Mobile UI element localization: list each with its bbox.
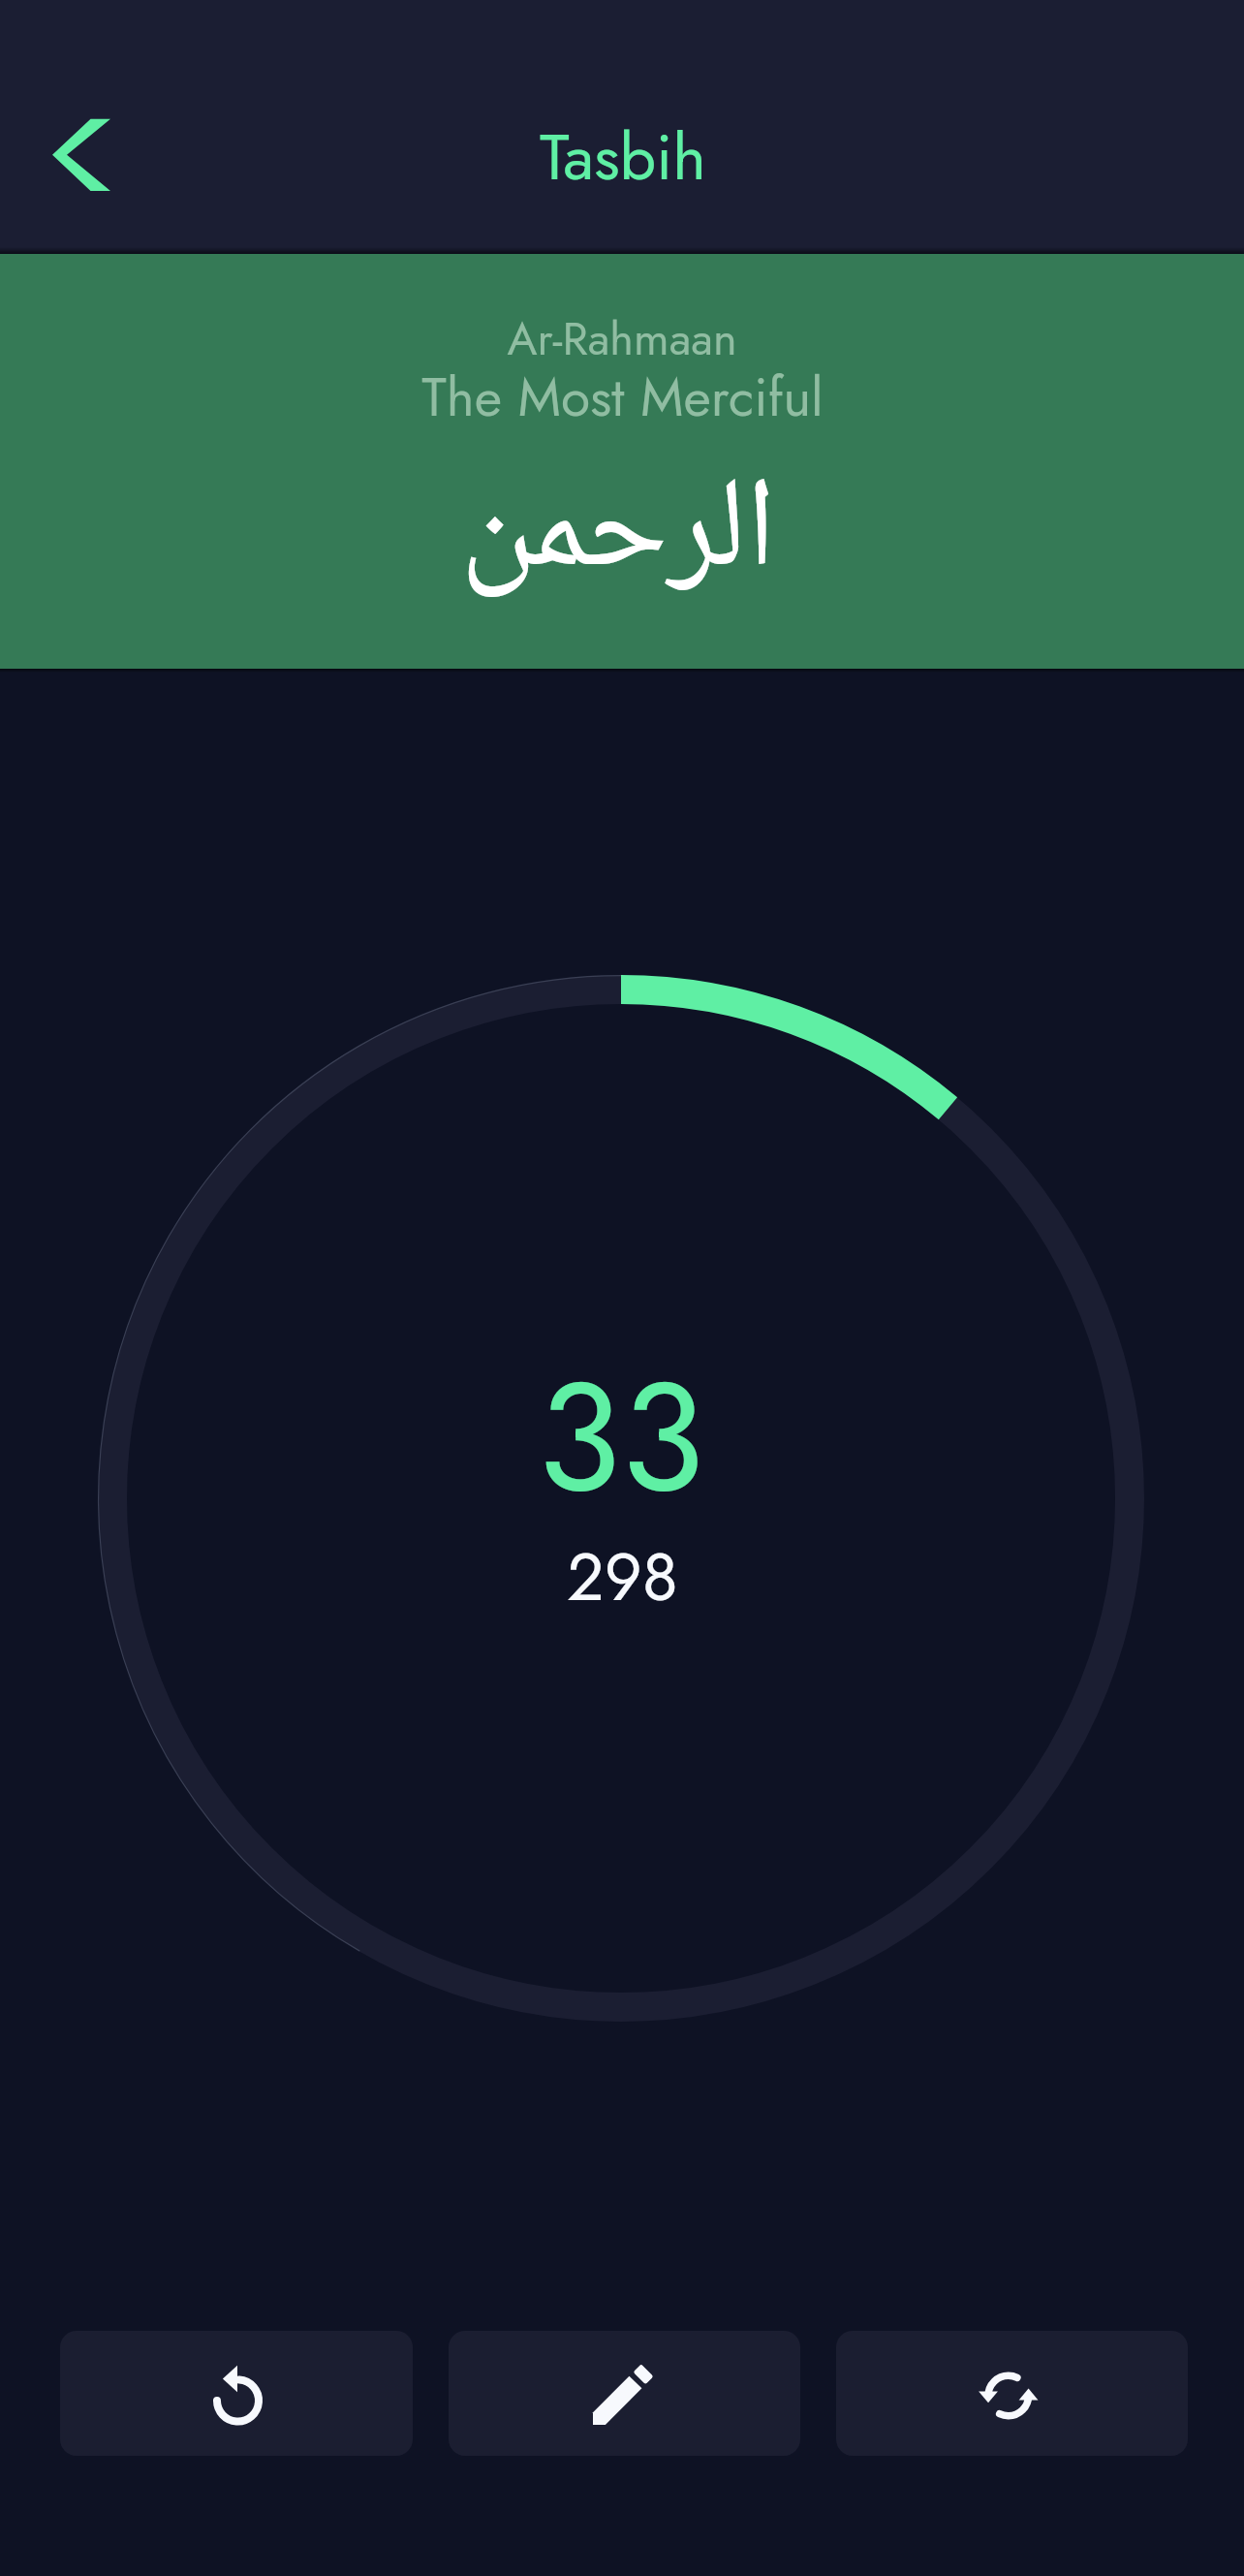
button[interactable]: Switch dhikr — [836, 2331, 1188, 2456]
staticText: Ar-Rahmaan — [507, 306, 737, 372]
button[interactable]: Tasbih counter — [98, 975, 1144, 2022]
button[interactable]: Edit — [449, 2331, 800, 2456]
staticText: 298 — [567, 1529, 678, 1624]
button[interactable]: Reset counter — [60, 2331, 413, 2456]
staticText: الرحمن — [460, 428, 776, 644]
staticText: 33 — [537, 1326, 704, 1547]
staticText: The Most Merciful — [421, 359, 824, 435]
button[interactable]: Back — [23, 100, 120, 191]
staticText: Tasbih — [540, 110, 706, 203]
